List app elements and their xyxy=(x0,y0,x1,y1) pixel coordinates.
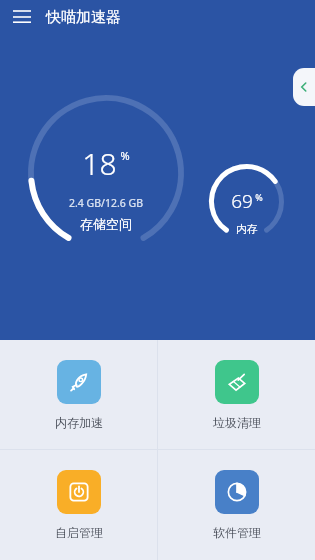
staticText: 存储空间 xyxy=(80,216,132,232)
button[interactable]: 自启管理 xyxy=(0,450,157,560)
button[interactable]: 垃圾清理 xyxy=(158,340,315,449)
staticText: 垃圾清理 xyxy=(213,415,261,430)
staticText: 18 xyxy=(82,143,117,184)
button[interactable]: 内存加速 xyxy=(0,340,157,449)
staticText: 软件管理 xyxy=(213,525,261,540)
button[interactable]: Expand panel xyxy=(293,68,315,106)
staticText: % xyxy=(255,191,263,203)
staticText: 自启管理 xyxy=(55,525,103,540)
staticText: 2.4 GB/12.6 GB xyxy=(69,196,143,210)
staticText: % xyxy=(120,148,130,163)
button[interactable]: Menu xyxy=(8,3,36,31)
staticText: 内存加速 xyxy=(55,415,103,430)
button[interactable]: 软件管理 xyxy=(158,450,315,560)
staticText: 内存 xyxy=(236,222,258,236)
staticText: 快喵加速器 xyxy=(46,8,121,27)
staticText: 69 xyxy=(231,188,253,214)
